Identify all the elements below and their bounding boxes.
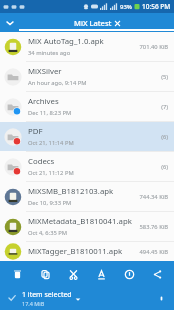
staticText: 583.76 KiB <box>139 223 168 231</box>
staticText: 1 item selected <box>22 290 72 300</box>
button[interactable]: More options <box>152 289 170 307</box>
button[interactable]: 1 item selected <box>22 290 81 307</box>
staticText: Dec 10, 9:33 PM <box>28 199 72 207</box>
button[interactable]: Delete <box>6 263 28 285</box>
button[interactable]: MiX Latest <box>19 15 174 31</box>
button[interactable]: Archives <box>0 92 174 121</box>
button[interactable]: MiXSilver <box>0 62 174 91</box>
staticText: 494.45 KiB <box>139 248 168 256</box>
staticText: Codecs <box>28 156 55 167</box>
staticText: (7) <box>161 103 168 111</box>
staticText: MiXSMB_B1812103.apk <box>28 186 114 197</box>
staticText: Oct 4, 6:35 PM <box>28 229 68 237</box>
staticText: 93% <box>120 3 132 11</box>
button[interactable]: MiXMetadata_B1810041.apk <box>0 212 174 241</box>
staticText: MiXMetadata_B1810041.apk <box>28 216 132 227</box>
staticText: Oct 21, 11:14 PM <box>28 139 74 147</box>
button[interactable]: Selection <box>4 290 20 306</box>
button[interactable]: Show tabs <box>0 13 19 32</box>
button[interactable]: Codecs <box>0 152 174 181</box>
staticText: 17.4 MiB <box>22 300 45 307</box>
staticText: An hour ago, 9:14 PM <box>28 79 87 87</box>
staticText: 34 minutes ago <box>28 49 71 57</box>
staticText: Archives <box>28 96 59 107</box>
staticText: (6) <box>161 163 168 171</box>
button[interactable]: Info <box>118 263 140 285</box>
staticText: MiXTagger_B1810011.apk <box>28 246 123 257</box>
staticText: MiX Latest <box>74 18 112 28</box>
button[interactable]: Cut <box>62 263 84 285</box>
staticText: MiXSilver <box>28 66 62 77</box>
staticText: Dec 11, 8:23 PM <box>28 109 72 117</box>
button[interactable]: MiX AutoTag_1.0.apk <box>0 32 174 61</box>
button[interactable]: PDF <box>0 122 174 151</box>
button[interactable]: MiXSMB_B1812103.apk <box>0 182 174 211</box>
staticText: 701.40 KiB <box>139 43 168 51</box>
staticText: 744.34 KiB <box>139 193 168 201</box>
staticText: 10:56 PM <box>142 2 171 11</box>
button[interactable]: Copy <box>34 263 56 285</box>
button[interactable]: Share <box>146 263 168 285</box>
button[interactable]: MiXTagger_B1810011.apk <box>0 242 174 261</box>
staticText: (5) <box>161 73 168 81</box>
staticText: (6) <box>161 133 168 141</box>
staticText: Oct 21, 11:12 PM <box>28 169 74 177</box>
staticText: MiX AutoTag_1.0.apk <box>28 36 104 47</box>
staticText: PDF <box>28 126 43 137</box>
button[interactable]: Rename <box>90 263 112 285</box>
